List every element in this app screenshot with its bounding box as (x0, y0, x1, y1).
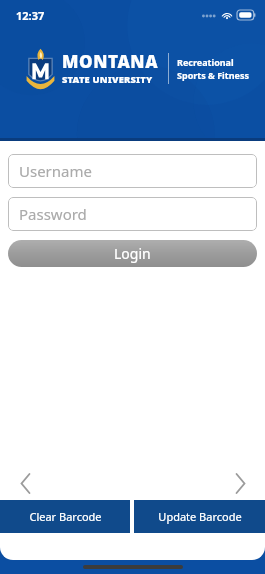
staticText: Login (114, 244, 151, 263)
button[interactable]: Login (8, 240, 257, 267)
button[interactable]: Clear Barcode (0, 500, 130, 533)
staticText: STATE UNIVERSITY (62, 73, 153, 86)
staticText: Password (19, 204, 87, 224)
button[interactable]: Next (225, 468, 255, 498)
staticText: Clear Barcode (29, 509, 102, 524)
staticText: MONTANA (62, 50, 159, 73)
button[interactable]: Username (8, 154, 257, 188)
button[interactable]: Update Barcode (134, 500, 265, 533)
staticText: Sports & Fitness (177, 69, 249, 81)
staticText: 12:37 (16, 8, 45, 23)
staticText: Username (19, 161, 92, 181)
staticText: Update Barcode (158, 509, 242, 524)
staticText: Recreational (177, 56, 234, 68)
button[interactable]: Password (8, 197, 257, 231)
button[interactable]: Previous (10, 468, 40, 498)
